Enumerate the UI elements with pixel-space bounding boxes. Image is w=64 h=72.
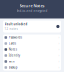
staticText: Cards	[9, 42, 16, 45]
staticText: ›	[58, 60, 59, 63]
staticText: Passwords	[9, 36, 22, 39]
staticText: ›	[58, 54, 59, 57]
staticText: ›	[58, 36, 59, 39]
staticText: ›	[58, 48, 59, 51]
staticText: Secure Notes	[19, 3, 44, 8]
staticText: Backup	[9, 66, 18, 69]
staticText: Vault unlocked	[4, 22, 27, 26]
button[interactable]: Backup	[3, 64, 61, 70]
button[interactable]: Cards	[3, 40, 61, 46]
button[interactable]: Vault unlocked	[3, 20, 61, 32]
button[interactable]: Wi-Fi	[3, 58, 61, 64]
staticText: ›	[58, 66, 59, 69]
staticText: 12 notes	[4, 27, 17, 31]
button[interactable]: Notes	[3, 46, 61, 52]
button[interactable]: Passwords	[3, 34, 61, 40]
button[interactable]: Identity	[3, 52, 61, 58]
staticText: Wi-Fi	[9, 60, 15, 63]
staticText: Notes	[9, 48, 17, 51]
staticText: ›	[58, 42, 59, 45]
staticText: Identity	[9, 54, 20, 57]
staticText: End-to-end encrypted	[16, 9, 47, 13]
